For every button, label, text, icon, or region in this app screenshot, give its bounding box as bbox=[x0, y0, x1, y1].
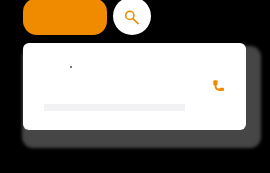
button[interactable] bbox=[23, 43, 246, 130]
button[interactable]: Filter chip bbox=[23, 0, 107, 35]
button[interactable]: Search bbox=[113, 0, 151, 35]
